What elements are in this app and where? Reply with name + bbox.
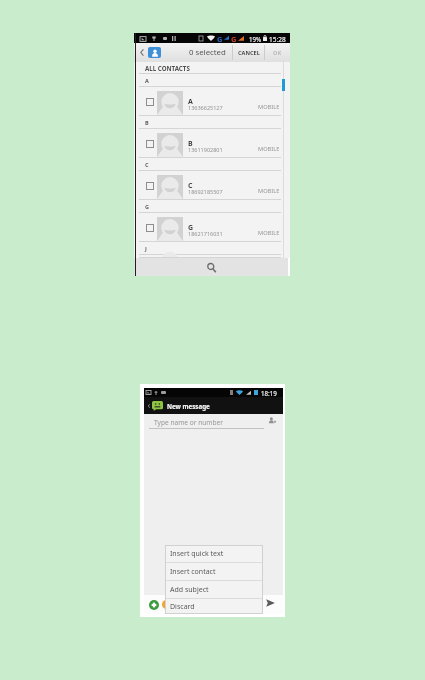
- staticText: ALL CONTACTS: [145, 64, 190, 72]
- staticText: 0 selected: [189, 47, 226, 58]
- button[interactable]: Contacts: [148, 47, 161, 58]
- staticText: 19%: [249, 35, 262, 43]
- staticText: OK: [273, 49, 282, 57]
- staticText: A: [188, 97, 193, 107]
- button[interactable]: Back: [135, 43, 148, 62]
- staticText: G: [231, 34, 237, 44]
- button[interactable]: Attach: [149, 600, 159, 610]
- button[interactable]: Back: [146, 403, 151, 408]
- staticText: Insert quick text: [170, 549, 224, 559]
- button[interactable]: CANCEL: [233, 43, 264, 62]
- button[interactable]: Discard: [170, 599, 263, 614]
- button[interactable]: Emoji: [162, 600, 171, 609]
- button[interactable]: B: [134, 129, 283, 158]
- staticText: C: [188, 181, 193, 191]
- staticText: MOBILE: [258, 103, 280, 111]
- staticText: A: [145, 77, 149, 84]
- staticText: 13800000000: [188, 272, 223, 275]
- staticText: MOBILE: [258, 145, 280, 153]
- button[interactable]: Send: [263, 597, 277, 609]
- staticText: 18692185507: [188, 188, 223, 195]
- button[interactable]: J: [134, 255, 283, 258]
- button[interactable]: C: [134, 171, 283, 200]
- staticText: MOBILE: [258, 187, 280, 195]
- staticText: New message: [167, 402, 210, 410]
- staticText: Type name or number: [154, 418, 223, 427]
- staticText: G: [145, 203, 149, 210]
- button[interactable]: Insert contact: [170, 563, 263, 580]
- button[interactable]: Search: [134, 258, 290, 276]
- staticText: 13611902801: [188, 146, 223, 153]
- staticText: G: [217, 34, 223, 44]
- button[interactable]: Type name or number: [149, 415, 264, 433]
- staticText: 13636625127: [188, 104, 223, 111]
- button[interactable]: OK: [265, 43, 289, 62]
- staticText: 15:28: [269, 35, 286, 44]
- staticText: 18:19: [261, 389, 277, 397]
- staticText: Discard: [170, 602, 195, 612]
- staticText: Add subject: [170, 585, 209, 595]
- staticText: B: [188, 139, 193, 149]
- staticText: 18621716031: [188, 230, 223, 237]
- staticText: MOBILE: [258, 229, 280, 237]
- staticText: G: [188, 223, 194, 233]
- staticText: J: [145, 245, 147, 252]
- button[interactable]: G: [134, 213, 283, 242]
- button[interactable]: Add contact: [266, 415, 277, 425]
- staticText: C: [145, 161, 149, 168]
- button[interactable]: A: [134, 87, 283, 116]
- button[interactable]: Add subject: [170, 581, 263, 598]
- button[interactable]: Insert quick text: [170, 545, 263, 562]
- staticText: CANCEL: [238, 49, 260, 57]
- staticText: B: [145, 119, 149, 126]
- staticText: Insert contact: [170, 567, 216, 577]
